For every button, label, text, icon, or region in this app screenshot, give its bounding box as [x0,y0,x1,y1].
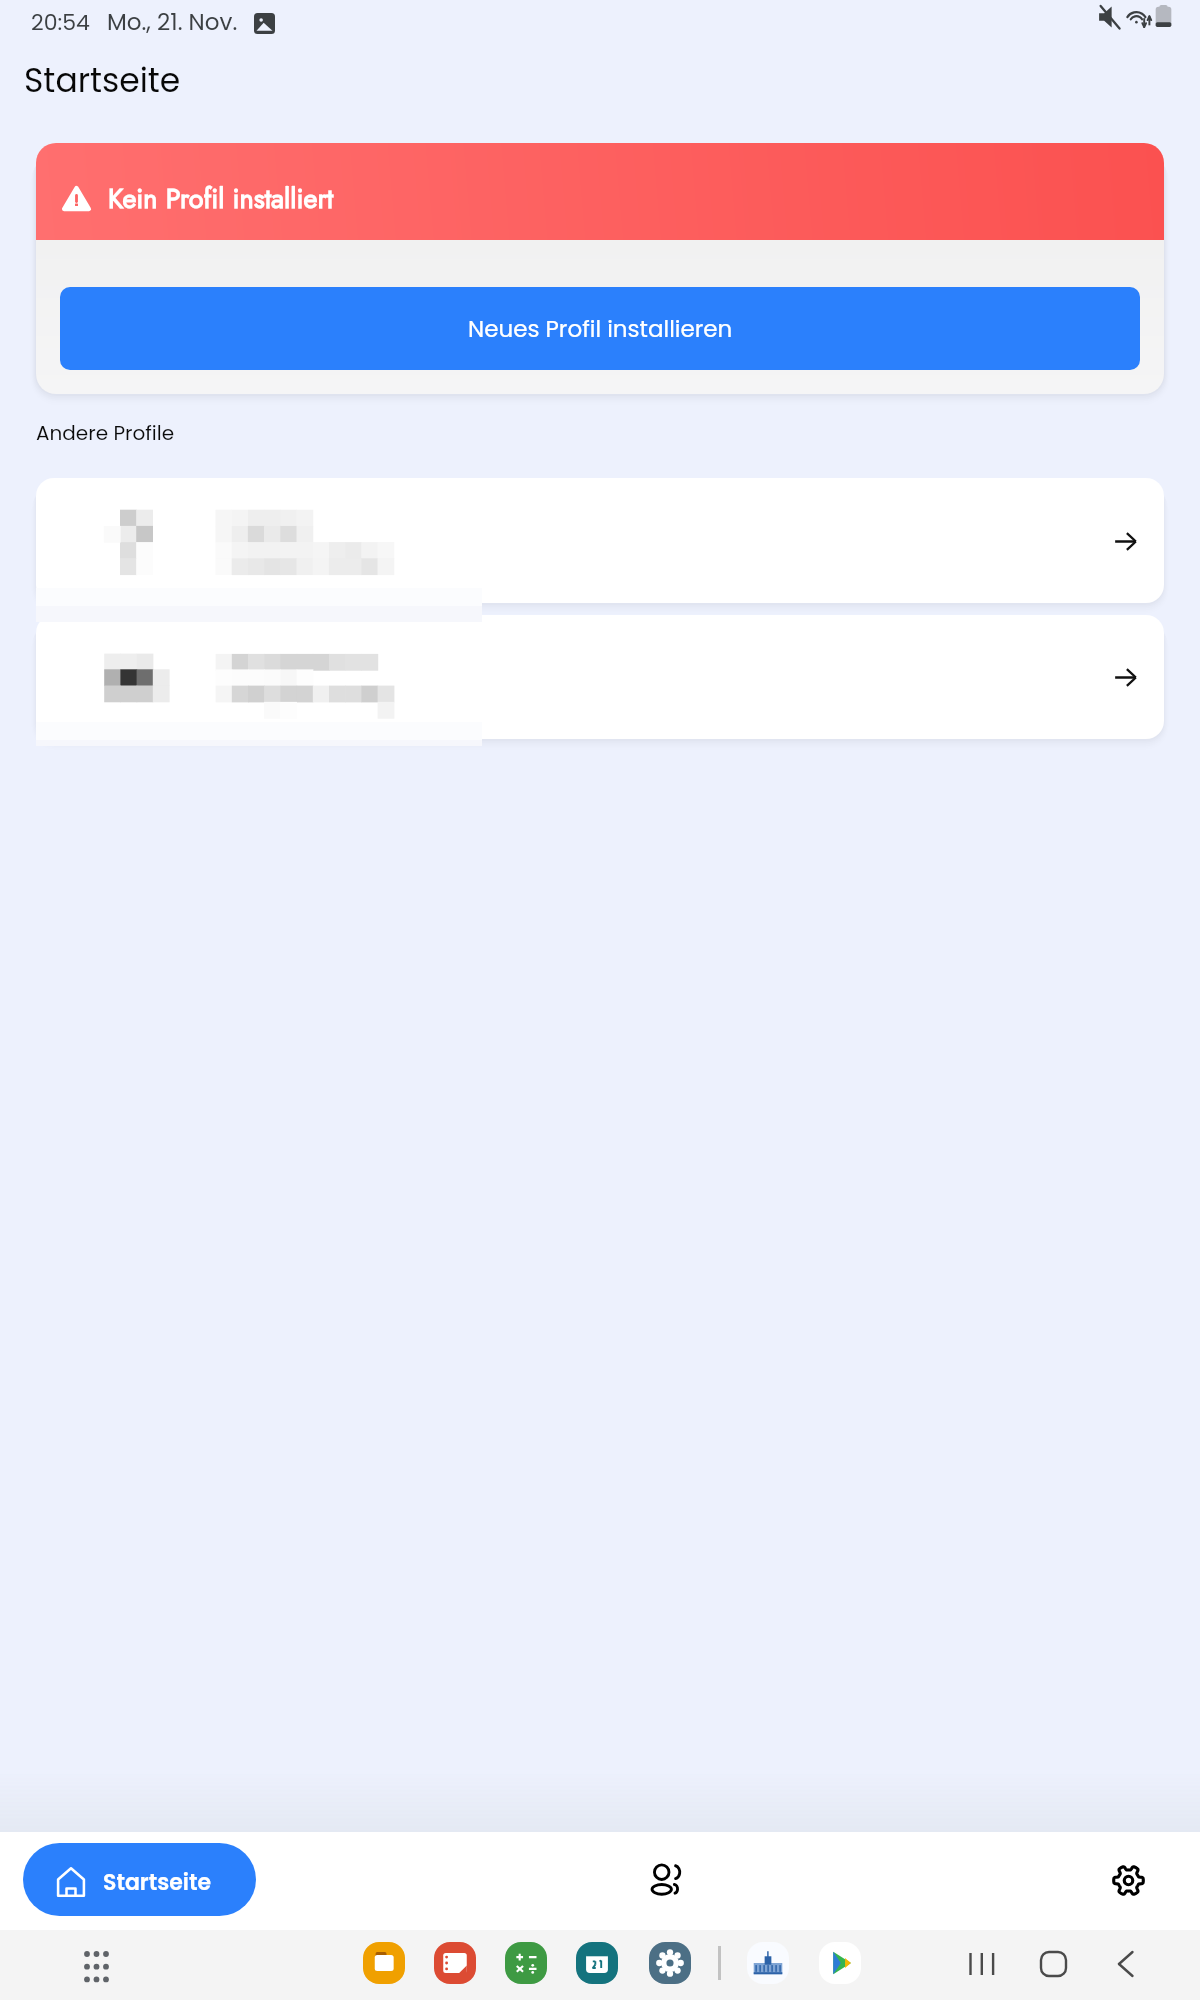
button[interactable]: Profil öffnen [36,615,1164,739]
button[interactable]: Einstellungen [1094,1846,1162,1914]
button[interactable]: Stadt-App [747,1942,789,1984]
button[interactable]: Startbildschirm [1029,1940,1077,1988]
button[interactable]: Eigene Dateien [363,1942,405,1984]
staticText: Mo., 21. Nov. [107,6,238,38]
button[interactable]: Kalender [576,1942,618,1984]
button[interactable]: Zurück [1108,1940,1156,1988]
button[interactable]: Profile [632,1846,702,1916]
button[interactable]: Notizen [434,1942,476,1984]
button[interactable]: Profil öffnen [1102,518,1148,564]
button[interactable]: Rechner [505,1942,547,1984]
button[interactable]: Play Store [819,1942,861,1984]
staticText: Kein Profil installiert [108,179,334,218]
staticText: 20:54 [31,7,90,38]
staticText: Startseite [24,57,181,103]
staticText: Andere Profile [36,419,175,447]
staticText: Startseite [103,1867,212,1898]
button[interactable]: Neues Profil installieren [60,287,1140,370]
button[interactable]: Letzte Apps [958,1940,1006,1988]
staticText: Neues Profil installieren [468,313,733,345]
button[interactable]: Startseite [23,1843,256,1916]
button[interactable]: Profil öffnen [1102,654,1148,700]
button[interactable]: Alle Apps [72,1940,120,1988]
button[interactable]: Profil öffnen [36,478,1164,603]
button[interactable]: Einstellungen [649,1942,691,1984]
